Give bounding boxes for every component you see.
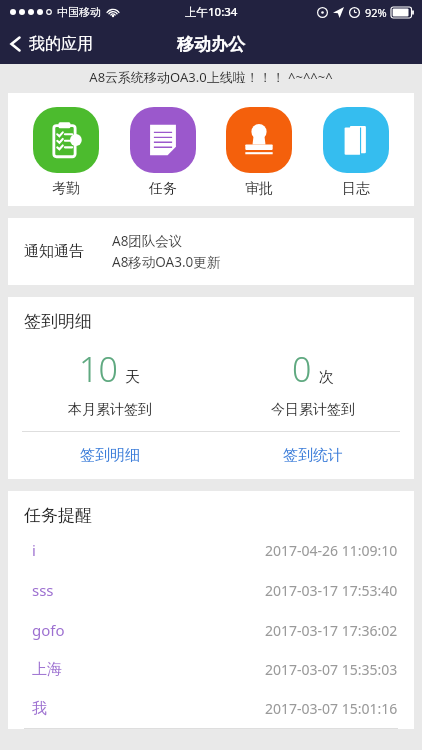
staticText: 上午10:34	[185, 4, 238, 20]
staticText: 移动办公	[177, 34, 245, 55]
staticText: 2017-03-17 17:36:02	[265, 621, 398, 640]
button[interactable]: 考勤	[27, 107, 105, 198]
staticText: A8移动OA3.0更新	[112, 253, 221, 271]
staticText: 2017-04-26 11:09:10	[265, 541, 398, 560]
button[interactable]: 通知通告	[8, 218, 414, 285]
staticText: 考勤	[52, 180, 80, 198]
button[interactable]: i	[8, 530, 414, 570]
staticText: 天	[125, 368, 140, 387]
staticText: 我的应用	[29, 34, 93, 54]
staticText: 本月累计签到	[68, 401, 152, 419]
staticText: 次	[319, 368, 334, 387]
staticText: 签到明细	[24, 311, 92, 332]
staticText: 我	[32, 699, 47, 718]
staticText: 92%	[365, 5, 387, 20]
staticText: 今日累计签到	[271, 401, 355, 419]
staticText: 2017-03-17 17:53:40	[265, 581, 398, 600]
button[interactable]: 日志	[317, 107, 395, 198]
staticText: 任务提醒	[24, 505, 92, 526]
staticText: 日志	[342, 180, 370, 198]
button[interactable]: 签到明细	[8, 432, 211, 479]
button[interactable]: 我的应用	[0, 24, 103, 64]
staticText: 签到统计	[283, 446, 343, 465]
button[interactable]: 上海	[8, 650, 414, 689]
button[interactable]: sss	[8, 570, 414, 610]
staticText: 中国移动	[57, 5, 101, 19]
button[interactable]: gofo	[8, 610, 414, 650]
staticText: 0	[292, 346, 312, 392]
staticText: 审批	[245, 180, 273, 198]
staticText: A8团队会议	[112, 232, 183, 250]
staticText: 上海	[32, 660, 62, 679]
staticText: gofo	[32, 620, 65, 640]
staticText: 10	[79, 346, 118, 392]
button[interactable]: 我	[8, 689, 414, 728]
staticText: 通知通告	[24, 242, 84, 261]
staticText: i	[32, 540, 36, 560]
button[interactable]: 任务	[124, 107, 202, 198]
staticText: 2017-03-07 15:35:03	[265, 660, 398, 679]
staticText: 签到明细	[80, 446, 140, 465]
staticText: 2017-03-07 15:01:16	[265, 699, 398, 718]
staticText: sss	[32, 580, 54, 600]
button[interactable]: 审批	[220, 107, 298, 198]
staticText: 任务	[149, 180, 177, 198]
button[interactable]: 签到统计	[211, 432, 414, 479]
staticText: A8云系统移动OA3.0上线啦！！！ ^~^^~^	[89, 68, 333, 86]
